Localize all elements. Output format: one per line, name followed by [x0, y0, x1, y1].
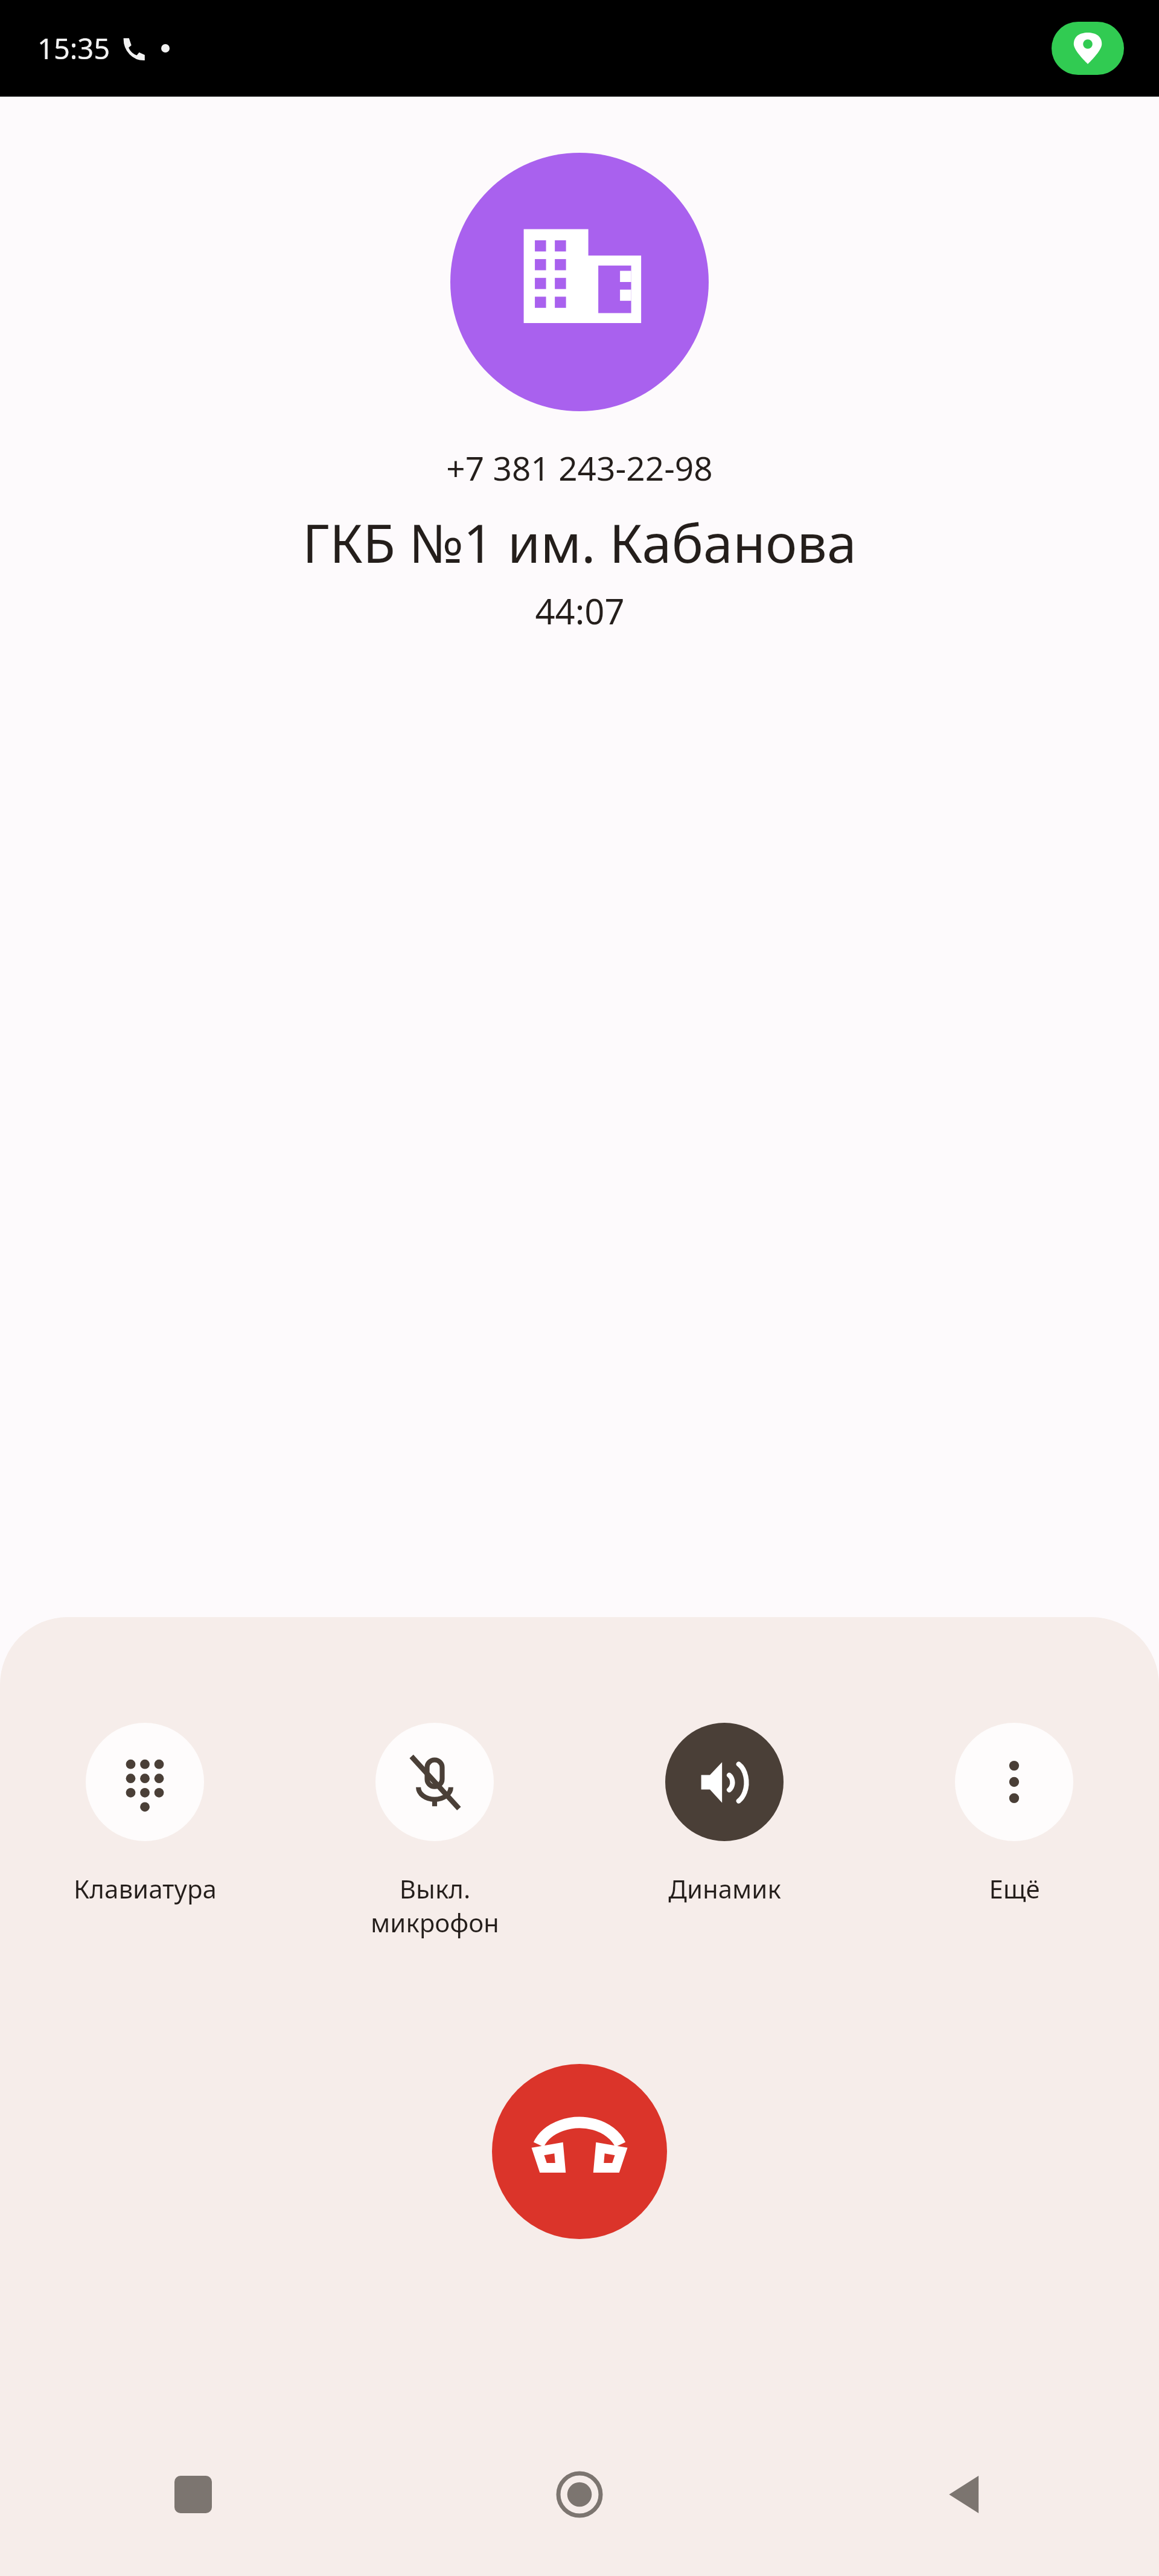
staticText: Выкл. микрофон — [371, 1871, 499, 1940]
button[interactable]: Геолокация активна — [1052, 22, 1124, 75]
staticText: 15:35 — [37, 29, 110, 68]
staticText: +7 381 243-22-98 — [446, 445, 713, 490]
button[interactable]: Недавние приложения — [0, 2449, 386, 2540]
staticText: Динамик — [668, 1871, 781, 1906]
button[interactable]: Выкл. микрофон — [290, 1723, 579, 1940]
button[interactable]: Главный экран — [386, 2449, 773, 2540]
button[interactable]: Завершить вызов — [492, 2064, 667, 2239]
button[interactable]: Ещё — [869, 1723, 1159, 1906]
button[interactable]: Динамик — [579, 1723, 869, 1906]
button[interactable]: Назад — [773, 2449, 1159, 2540]
staticText: ГКБ №1 им. Кабанова — [302, 506, 857, 572]
staticText: Ещё — [989, 1871, 1040, 1906]
staticText: 44:07 — [535, 587, 625, 635]
button[interactable]: Клавиатура — [0, 1723, 290, 1906]
staticText: Клавиатура — [74, 1871, 217, 1906]
